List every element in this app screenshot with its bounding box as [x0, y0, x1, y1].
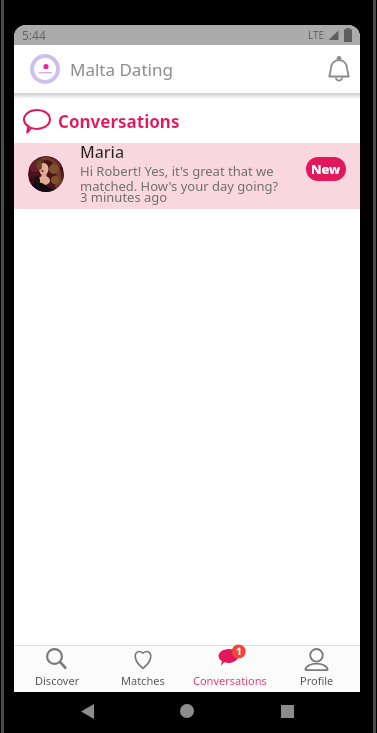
- staticText: Discover: [35, 673, 80, 688]
- button[interactable]: Discover: [14, 646, 100, 692]
- staticText: 3 minutes ago: [80, 188, 168, 206]
- staticText: Malta Dating: [70, 58, 173, 81]
- staticText: 5:44: [22, 27, 46, 43]
- staticText: Conversations: [58, 110, 180, 133]
- button[interactable]: [77, 703, 97, 719]
- button[interactable]: [277, 701, 297, 721]
- button[interactable]: New: [306, 157, 346, 181]
- staticText: Profile: [300, 673, 334, 688]
- staticText: Maria: [80, 141, 125, 163]
- button[interactable]: Profile: [273, 646, 360, 692]
- staticText: Matches: [121, 673, 165, 688]
- button[interactable]: Maria: [14, 143, 360, 209]
- staticText: Conversations: [193, 673, 267, 688]
- staticText: Hi Robert! Yes, it's great that we match…: [80, 162, 279, 195]
- button[interactable]: [324, 54, 354, 84]
- button[interactable]: Conversations: [186, 646, 273, 692]
- staticText: LTE: [308, 28, 325, 42]
- button[interactable]: [177, 701, 197, 721]
- button[interactable]: Matches: [100, 646, 186, 692]
- staticText: New: [311, 160, 341, 178]
